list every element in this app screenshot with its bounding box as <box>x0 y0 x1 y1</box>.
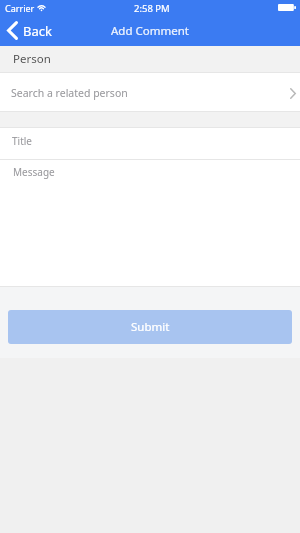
button[interactable]: Message <box>0 160 300 287</box>
staticText: Search a related person <box>11 86 128 100</box>
staticText: Carrier <box>5 2 35 14</box>
staticText: Add Comment <box>0 23 300 39</box>
staticText: Back <box>23 22 52 40</box>
button[interactable]: Title <box>0 128 300 159</box>
other: Back <box>7 21 18 40</box>
button[interactable]: Back <box>2 19 58 45</box>
staticText: Message <box>13 165 55 179</box>
button[interactable]: Search a related person <box>0 73 300 111</box>
button[interactable]: Submit <box>8 310 292 344</box>
staticText: 2:58 PM <box>134 2 170 15</box>
staticText: Person <box>13 51 51 67</box>
staticText: Submit <box>131 319 170 335</box>
staticText: Title <box>12 134 32 148</box>
